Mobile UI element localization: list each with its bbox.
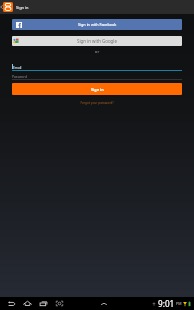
other: Navigate up: [0, 4, 3, 10]
button[interactable]: Recent apps: [35, 297, 51, 310]
button[interactable]: Forgot your password?: [12, 101, 182, 105]
other: Expand: [101, 302, 107, 306]
button[interactable]: Sign in with Facebook: [12, 19, 182, 30]
other: Location: [152, 301, 156, 307]
staticText: Sign in: [91, 87, 104, 92]
staticText: Password: [12, 74, 27, 78]
button[interactable]: Sign in with Google: [12, 36, 182, 46]
staticText: Email: [13, 65, 22, 69]
staticText: or: [12, 48, 182, 54]
button[interactable]: Home: [19, 297, 35, 310]
button[interactable]: Back: [3, 297, 19, 310]
staticText: Sign in: [16, 5, 29, 10]
staticText: 9:01: [158, 298, 175, 309]
button[interactable]: Sign in: [12, 83, 182, 95]
staticText: Sign in with Facebook: [78, 22, 117, 27]
staticText: Sign in with Google: [77, 38, 117, 44]
button[interactable]: Screenshot: [51, 297, 67, 310]
staticText: PM: [176, 301, 182, 306]
